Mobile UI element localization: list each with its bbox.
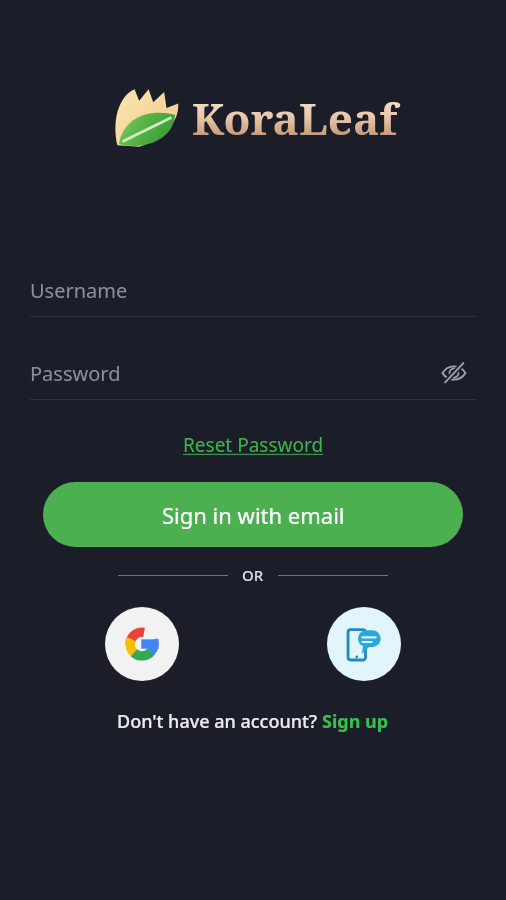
staticText: Password (30, 360, 121, 387)
button[interactable]: Sign up (322, 709, 389, 734)
button[interactable]: Sign in with SMS (327, 607, 401, 681)
staticText: Reset Password (183, 432, 324, 458)
staticText: Username (30, 277, 128, 304)
staticText: Sign in with email (162, 500, 345, 530)
button[interactable]: Sign in with Google (105, 607, 179, 681)
staticText: OR (242, 565, 264, 585)
button[interactable]: Show password (432, 351, 476, 395)
staticText: Don't have an account? (117, 709, 322, 734)
button[interactable]: Reset Password (177, 428, 330, 462)
button[interactable]: Sign in with email (43, 482, 463, 547)
button[interactable]: Username (30, 264, 476, 316)
button[interactable]: Password (30, 347, 476, 399)
staticText: Sign up (322, 709, 389, 734)
staticText: KoraLeaf (192, 88, 398, 148)
